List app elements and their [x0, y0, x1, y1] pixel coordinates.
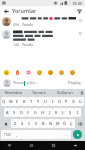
- button[interactable]: Yanıtla: [22, 22, 33, 27]
- button[interactable]: E: [14, 97, 21, 106]
- button[interactable]: Geri: [6, 142, 13, 149]
- button[interactable]: Emoji: [36, 69, 42, 75]
- staticText: M: [56, 121, 60, 126]
- button[interactable]: Ç: [68, 119, 75, 128]
- button[interactable]: Beğen: [77, 30, 83, 36]
- staticText: C: [28, 121, 31, 126]
- staticText: V: [35, 121, 38, 126]
- button[interactable]: R: [21, 97, 28, 106]
- staticText: A: [6, 110, 9, 115]
- button[interactable]: Shift: [1, 119, 11, 128]
- staticText: T: [30, 99, 33, 104]
- button[interactable]: T: [28, 97, 35, 106]
- staticText: G: [34, 110, 37, 115]
- staticText: L: [62, 110, 65, 115]
- button[interactable]: Q: [1, 97, 7, 106]
- staticText: Ç: [70, 121, 73, 126]
- staticText: I: [52, 99, 54, 104]
- button[interactable]: Emoji: [47, 69, 53, 75]
- button[interactable]: Paylaş: [67, 80, 82, 86]
- button[interactable]: D: [18, 108, 25, 117]
- staticText: O: [58, 99, 62, 104]
- button[interactable]: X: [19, 119, 26, 128]
- button[interactable]: L: [60, 108, 67, 117]
- staticText: U: [44, 99, 47, 104]
- staticText: Paylaş: [68, 80, 81, 86]
- staticText: K: [55, 110, 58, 115]
- staticText: Y: [37, 99, 40, 104]
- staticText: Kullanıcı: [57, 90, 73, 95]
- button[interactable]: Emoji: [14, 69, 20, 75]
- staticText: Ö: [63, 121, 67, 126]
- staticText: E: [16, 99, 19, 104]
- button[interactable]: Filtrele: [75, 7, 83, 15]
- button[interactable]: Ü: [77, 97, 84, 106]
- button[interactable]: Ğ: [70, 97, 77, 106]
- button[interactable]: Z: [11, 119, 19, 128]
- button[interactable]: V: [33, 119, 40, 128]
- button[interactable]: U: [42, 97, 49, 106]
- button[interactable]: C: [26, 119, 33, 128]
- staticText: ?123: [4, 133, 11, 137]
- button[interactable]: N: [47, 119, 54, 128]
- staticText: Yanıtla: [22, 42, 33, 47]
- button[interactable]: J: [46, 108, 53, 117]
- staticText: P: [65, 99, 68, 104]
- staticText: D: [20, 110, 23, 115]
- button[interactable]: ?123: [1, 130, 13, 139]
- button[interactable]: Tamam: [26, 89, 52, 96]
- button[interactable]: Beğen: [77, 17, 83, 23]
- staticText: Merhaba: [5, 90, 22, 95]
- button[interactable]: .: [63, 130, 71, 139]
- button[interactable]: Emoji: [69, 69, 75, 75]
- staticText: Tamam: [32, 90, 46, 95]
- staticText: Yorum ekle...: [13, 80, 39, 86]
- staticText: 14d: [13, 42, 19, 47]
- button[interactable]: Ana ekran: [28, 142, 35, 149]
- staticText: Yanıtla: [22, 22, 33, 27]
- button[interactable]: Son kullanılanlar: [50, 142, 57, 149]
- button[interactable]: B: [40, 119, 47, 128]
- button[interactable]: G: [32, 108, 39, 117]
- button[interactable]: 49d: [0, 15, 85, 27]
- button[interactable]: W: [7, 97, 14, 106]
- button[interactable]: Merhaba: [0, 89, 26, 96]
- button[interactable]: İ: [74, 108, 81, 117]
- button[interactable]: Gönder: [73, 130, 82, 139]
- button[interactable]: F: [25, 108, 32, 117]
- button[interactable]: S: [11, 108, 18, 117]
- button[interactable]: Sil: [75, 119, 84, 128]
- button[interactable]: I: [49, 97, 56, 106]
- staticText: N: [49, 121, 53, 126]
- button[interactable]: Geri: [2, 7, 10, 15]
- staticText: F: [27, 110, 30, 115]
- button[interactable]: Ö: [61, 119, 68, 128]
- button[interactable]: M: [54, 119, 61, 128]
- staticText: Ğ: [72, 99, 75, 104]
- button[interactable]: Emoji: [3, 69, 9, 75]
- staticText: Yorumlar: [12, 7, 37, 14]
- staticText: Q: [2, 99, 6, 104]
- staticText: W: [9, 99, 13, 104]
- button[interactable]: P: [63, 97, 70, 106]
- staticText: Z: [14, 121, 17, 126]
- button[interactable]: 14d: [0, 27, 85, 47]
- button[interactable]: A: [4, 108, 11, 117]
- staticText: 18:05: [72, 1, 83, 6]
- button[interactable]: ,: [13, 130, 21, 139]
- button[interactable]: Y: [35, 97, 42, 106]
- staticText: ,: [16, 132, 18, 137]
- button[interactable]: K: [53, 108, 60, 117]
- staticText: H: [41, 110, 44, 115]
- button[interactable]: Yanıtla: [22, 42, 33, 47]
- button[interactable]: Kullanıcı: [52, 89, 78, 96]
- button[interactable]: Sesle yaz: [78, 89, 85, 96]
- button[interactable]: Klavye: [72, 142, 79, 149]
- button[interactable]: Emoji: [25, 69, 31, 75]
- button[interactable]: H: [39, 108, 46, 117]
- staticText: X: [21, 121, 24, 126]
- button[interactable]: O: [56, 97, 63, 106]
- button[interactable]: Emoji: [58, 69, 64, 75]
- button[interactable]: Ş: [67, 108, 74, 117]
